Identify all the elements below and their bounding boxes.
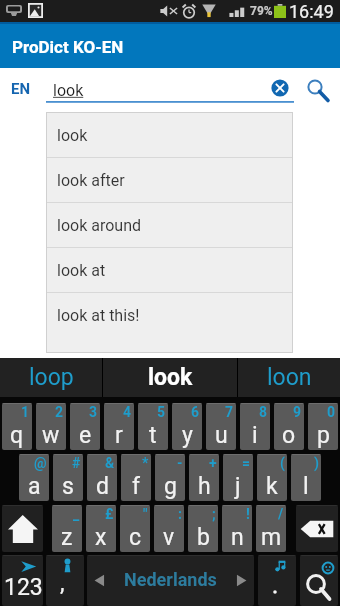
staticText: look at (57, 261, 106, 280)
button[interactable]: Symbols (2, 555, 43, 606)
staticText: _ (73, 506, 80, 522)
button[interactable]: _ (52, 505, 82, 552)
staticText: c (129, 524, 142, 551)
button[interactable]: Search (302, 74, 330, 102)
button[interactable]: loop (0, 358, 102, 397)
button[interactable]: Backspace (296, 505, 338, 552)
button[interactable]: EN (6, 75, 36, 103)
staticText: i (252, 422, 258, 449)
button[interactable]: Period (258, 555, 296, 606)
staticText: z (61, 524, 73, 551)
staticText: f (132, 473, 140, 500)
staticText: q (10, 422, 24, 449)
staticText: 2 (55, 404, 64, 420)
staticText: ; (212, 506, 216, 522)
staticText: b (197, 524, 210, 551)
button[interactable]: : (154, 505, 184, 552)
button[interactable]: 2 (36, 403, 66, 450)
staticText: ProDict KO-EN (12, 37, 124, 57)
staticText: & (105, 455, 115, 471)
button[interactable]: # (53, 454, 83, 501)
staticText: £ (105, 506, 114, 522)
button[interactable]: ) (291, 454, 321, 501)
staticText: - (177, 455, 183, 471)
staticText: look (57, 126, 88, 145)
staticText: n (231, 524, 244, 551)
staticText: 6 (191, 404, 200, 420)
button[interactable]: = (223, 454, 253, 501)
staticText: look (148, 364, 193, 391)
button[interactable]: Clear text (269, 77, 291, 99)
staticText: o (282, 422, 296, 449)
button[interactable]: Search (300, 555, 338, 606)
button[interactable]: look after (47, 158, 292, 203)
button[interactable]: 0 (308, 403, 338, 450)
button[interactable]: look (103, 358, 237, 397)
staticText: 0 (327, 404, 336, 420)
staticText: d (96, 473, 109, 500)
staticText: a (28, 473, 41, 500)
button[interactable]: ProDict KO-EN (0, 22, 340, 68)
staticText: look at this! (57, 306, 140, 325)
staticText: look after (57, 171, 125, 190)
staticText: p (317, 422, 330, 449)
button[interactable]: * (121, 454, 151, 501)
button[interactable]: look (47, 113, 292, 158)
staticText: m (261, 524, 282, 551)
button[interactable]: & (87, 454, 117, 501)
staticText: k (266, 473, 278, 500)
staticText: 123 (4, 574, 43, 601)
button[interactable]: 8 (240, 403, 270, 450)
button[interactable]: " (120, 505, 150, 552)
staticText: x (95, 524, 107, 551)
staticText: @ (34, 455, 47, 471)
button[interactable]: 7 (206, 403, 236, 450)
staticText: EN (11, 80, 31, 98)
button[interactable]: look around (47, 203, 292, 248)
button[interactable]: 9 (274, 403, 304, 450)
staticText: ! (246, 506, 250, 522)
button[interactable]: 1 (2, 403, 32, 450)
button[interactable]: / (256, 505, 286, 552)
staticText: e (79, 422, 92, 449)
staticText: l (303, 473, 309, 500)
staticText: look (53, 81, 84, 100)
button[interactable]: £ (86, 505, 116, 552)
button[interactable]: ! (222, 505, 252, 552)
button[interactable]: Shift (2, 505, 43, 552)
button[interactable]: 5 (138, 403, 168, 450)
staticText: j (235, 473, 241, 500)
staticText: loon (267, 364, 312, 391)
button[interactable]: Comma (46, 555, 84, 606)
button[interactable]: 3 (70, 403, 100, 450)
button[interactable]: ; (188, 505, 218, 552)
button[interactable]: 4 (104, 403, 134, 450)
button[interactable]: loon (238, 358, 340, 397)
staticText: 7 (225, 404, 234, 420)
staticText: 1 (21, 404, 30, 420)
staticText: ( (280, 455, 285, 471)
button[interactable]: - (155, 454, 185, 501)
staticText: 5 (157, 404, 166, 420)
staticText: r (115, 422, 123, 449)
staticText: : (178, 506, 182, 522)
staticText: g (164, 473, 177, 500)
button[interactable]: ( (257, 454, 287, 501)
staticText: w (42, 422, 60, 449)
staticText: look around (57, 216, 141, 235)
staticText: v (163, 524, 175, 551)
staticText: * (142, 455, 149, 471)
button[interactable]: 6 (172, 403, 202, 450)
staticText: loop (29, 364, 74, 391)
staticText: , (60, 570, 65, 597)
staticText: / (278, 506, 284, 522)
staticText: 4 (123, 404, 132, 420)
button[interactable]: @ (19, 454, 49, 501)
button[interactable]: Nederlands (87, 555, 254, 606)
button[interactable]: look at (47, 248, 292, 293)
button[interactable]: + (189, 454, 219, 501)
staticText: # (72, 455, 81, 471)
button[interactable]: look at this! (47, 293, 292, 338)
staticText: u (215, 422, 228, 449)
staticText: Nederlands (124, 569, 217, 590)
